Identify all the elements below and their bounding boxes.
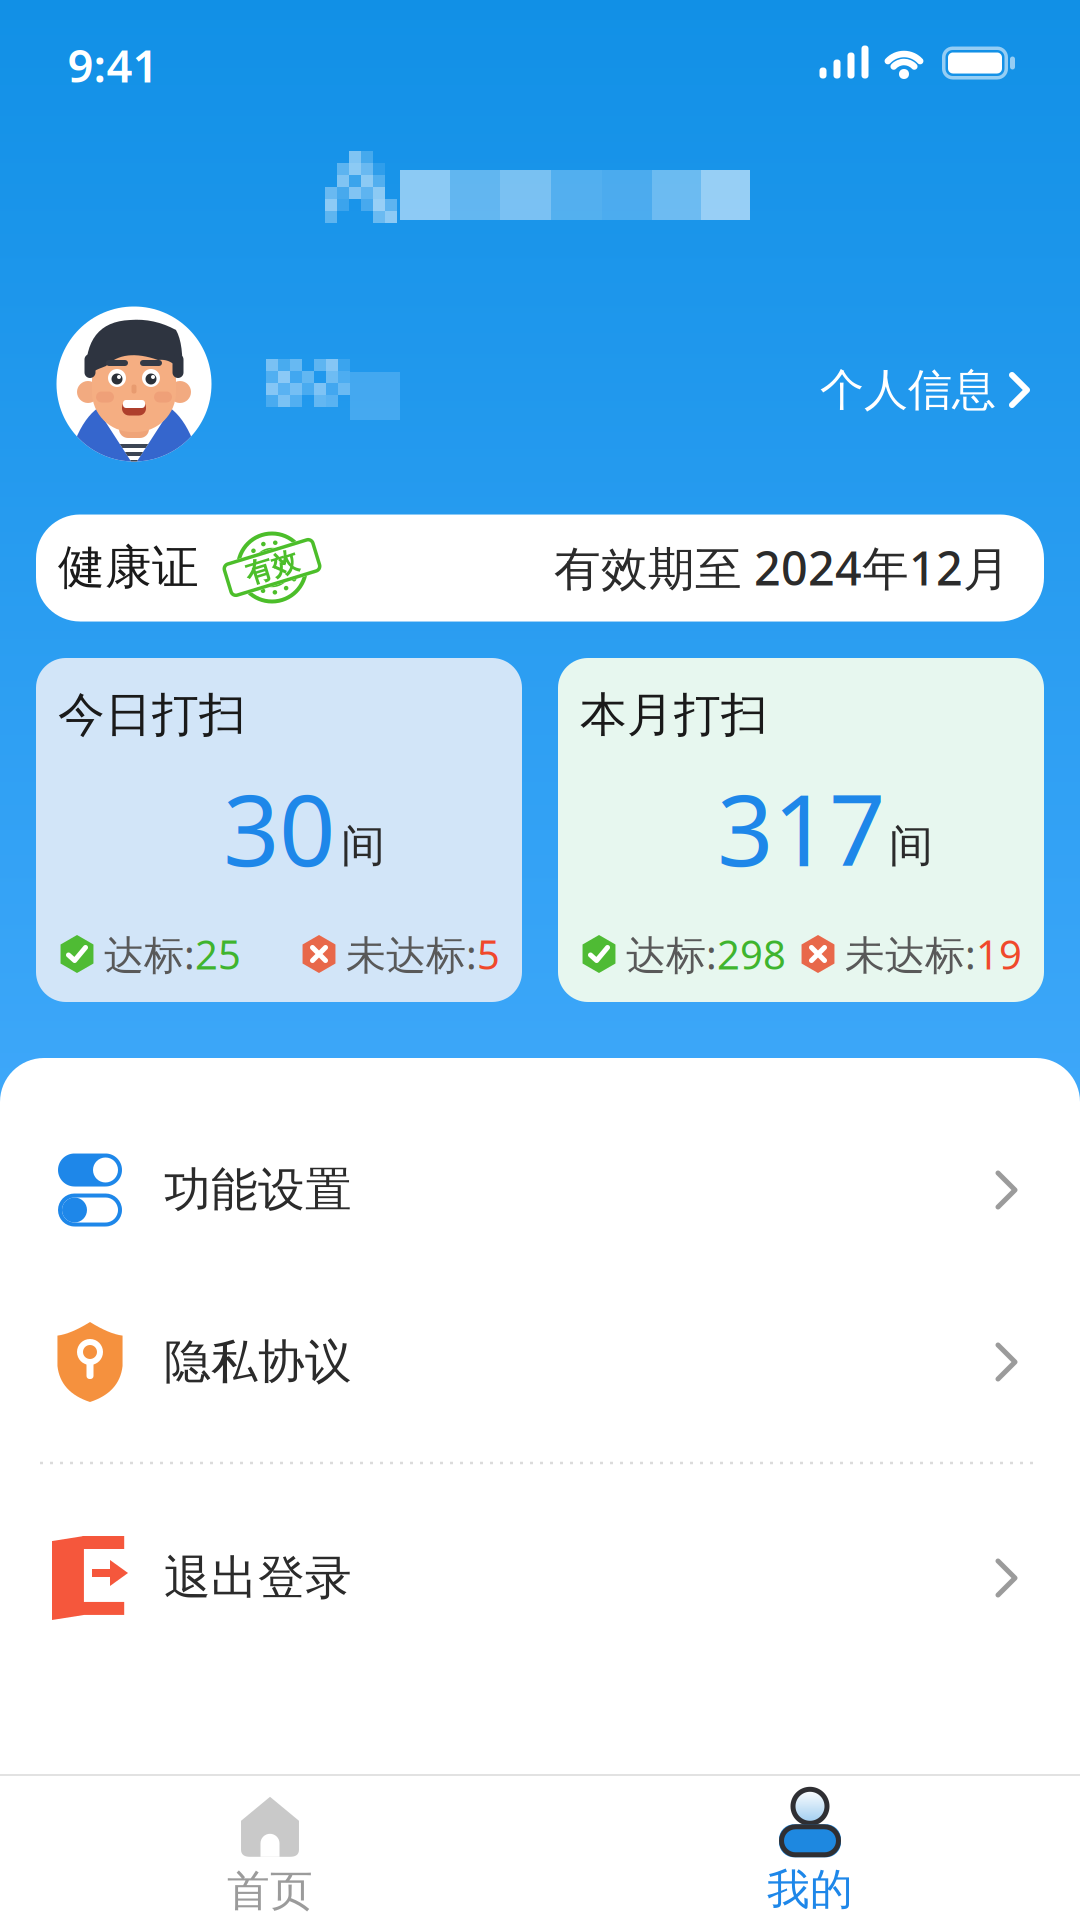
staticText: 25 [195,927,241,980]
staticText: 19 [976,927,1022,980]
staticText: 有效 [245,551,299,584]
staticText: 功能设置 [164,1161,352,1219]
staticText: 健康证 [58,539,199,596]
button[interactable]: 退出登录 [0,1493,1080,1663]
staticText: 5 [477,927,500,980]
staticText: 间 [889,819,933,873]
staticText: 隐私协议 [164,1333,352,1391]
staticText: 317 [717,762,885,893]
staticText: 有效期至 2024年12月 [554,536,1010,598]
staticText: 达标: [104,927,195,980]
staticText: 退出登录 [164,1549,352,1607]
staticText: 9:41 [67,35,158,95]
button[interactable]: 个人信息 [820,363,1030,417]
staticText: 个人信息 [820,363,996,417]
staticText: 首页 [227,1865,313,1917]
staticText: 间 [341,819,385,873]
staticText: 达标: [626,927,717,980]
staticText: 30 [223,762,335,893]
button[interactable]: 我的 [660,1784,960,1920]
staticText: 今日打扫 [58,686,246,744]
staticText: 本月打扫 [580,686,768,744]
button[interactable]: 隐私协议 [0,1277,1080,1447]
staticText: 未达标: [845,927,976,980]
button[interactable]: 功能设置 [0,1105,1080,1275]
staticText: 298 [717,927,786,980]
button[interactable]: 首页 [120,1789,420,1920]
staticText: 我的 [767,1863,853,1916]
staticText: 未达标: [346,927,477,980]
